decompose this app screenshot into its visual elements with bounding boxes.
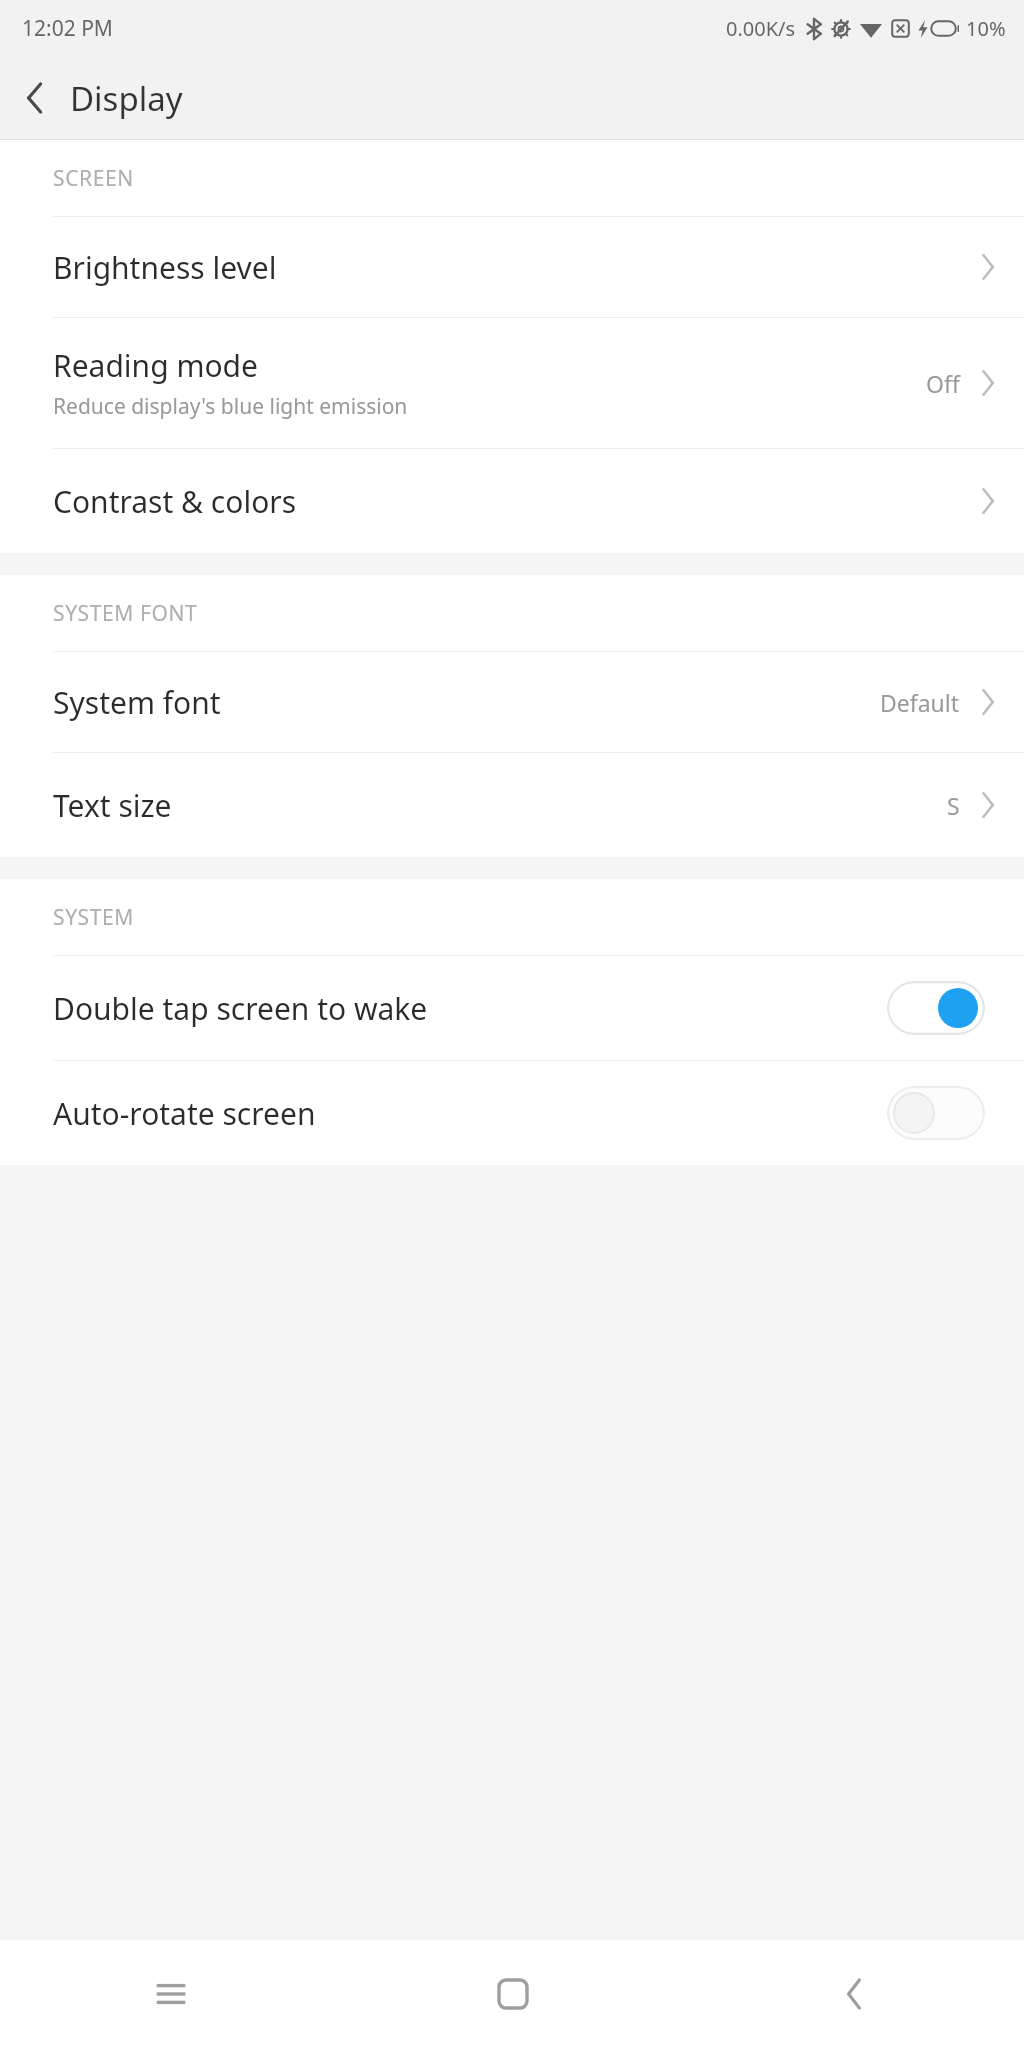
button[interactable]: Back: [0, 63, 70, 133]
staticText: Contrast & colors: [53, 481, 297, 522]
staticText: System font: [53, 682, 221, 723]
button[interactable]: Contrast & colors: [0, 449, 1024, 553]
staticText: Auto-rotate screen: [53, 1093, 887, 1134]
button[interactable]: Back: [683, 1940, 1024, 2048]
staticText: 0.00K/s: [726, 15, 796, 42]
staticText: S: [947, 790, 960, 821]
staticText: SYSTEM: [53, 903, 134, 932]
button[interactable]: Brightness level: [0, 217, 1024, 317]
button[interactable]: Off: [887, 1086, 985, 1140]
button[interactable]: System font: [0, 652, 1024, 752]
staticText: Off: [926, 368, 960, 399]
button[interactable]: Double tap screen to wake: [0, 956, 1024, 1060]
staticText: 12:02 PM: [22, 14, 113, 43]
button[interactable]: Reading mode: [0, 318, 1024, 448]
staticText: Default: [880, 687, 960, 718]
staticText: Reading mode: [53, 345, 258, 386]
button[interactable]: Auto-rotate screen: [0, 1061, 1024, 1165]
button[interactable]: Recents: [0, 1940, 342, 2048]
staticText: 10%: [966, 15, 1006, 42]
staticText: Text size: [53, 785, 172, 826]
staticText: Brightness level: [53, 247, 277, 288]
staticText: Reduce display's blue light emission: [53, 392, 408, 421]
staticText: SYSTEM FONT: [53, 599, 198, 628]
staticText: Display: [70, 76, 183, 121]
button[interactable]: On: [887, 981, 985, 1035]
button[interactable]: Home: [342, 1940, 683, 2048]
staticText: Double tap screen to wake: [53, 988, 887, 1029]
button[interactable]: Text size: [0, 753, 1024, 857]
staticText: SCREEN: [53, 164, 134, 193]
